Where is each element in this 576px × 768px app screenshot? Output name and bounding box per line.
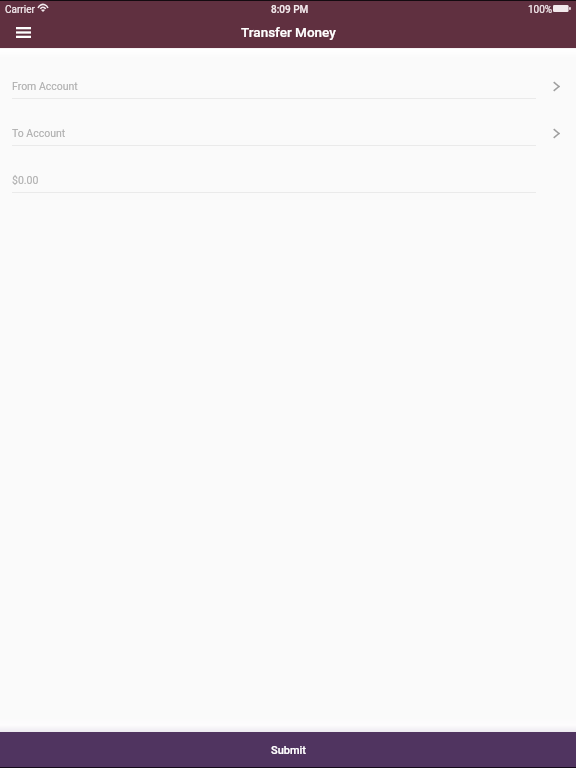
button[interactable]: Choose account — [545, 75, 569, 98]
button[interactable]: Open navigation menu — [8, 17, 38, 47]
staticText: 8:09 PM — [271, 4, 309, 16]
staticText: Submit — [271, 744, 307, 757]
staticText: Carrier — [5, 4, 35, 16]
staticText: $0.00 — [12, 174, 39, 186]
button[interactable]: To Account — [0, 116, 576, 163]
staticText: 100% — [528, 4, 553, 16]
staticText: To Account — [12, 127, 66, 139]
button[interactable]: Submit — [0, 732, 576, 768]
staticText: Transfer Money — [241, 24, 336, 40]
button[interactable]: $0.00 — [0, 163, 576, 210]
button[interactable]: From Account — [0, 69, 576, 116]
staticText: From Account — [12, 80, 78, 92]
button[interactable]: Choose account — [545, 122, 569, 145]
